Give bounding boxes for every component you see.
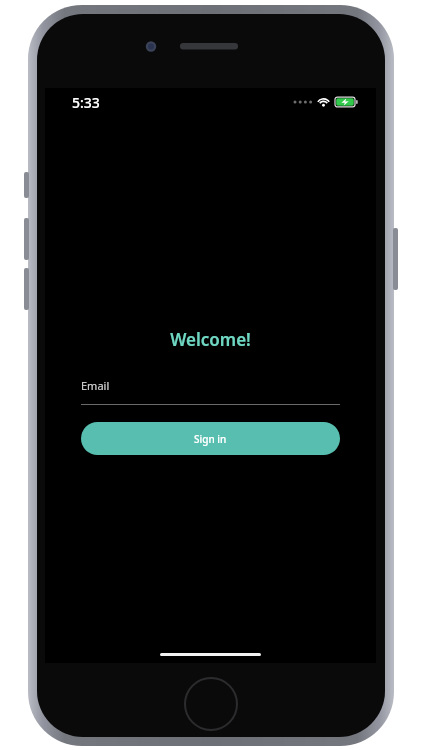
staticText: Welcome! bbox=[170, 328, 251, 351]
staticText: Email bbox=[81, 378, 110, 393]
button[interactable]: Sign in bbox=[81, 422, 340, 455]
button[interactable]: Email bbox=[81, 378, 340, 405]
staticText: 5:33 bbox=[72, 93, 100, 112]
staticText: Sign in bbox=[194, 432, 227, 446]
button[interactable]: Home bbox=[181, 674, 241, 734]
